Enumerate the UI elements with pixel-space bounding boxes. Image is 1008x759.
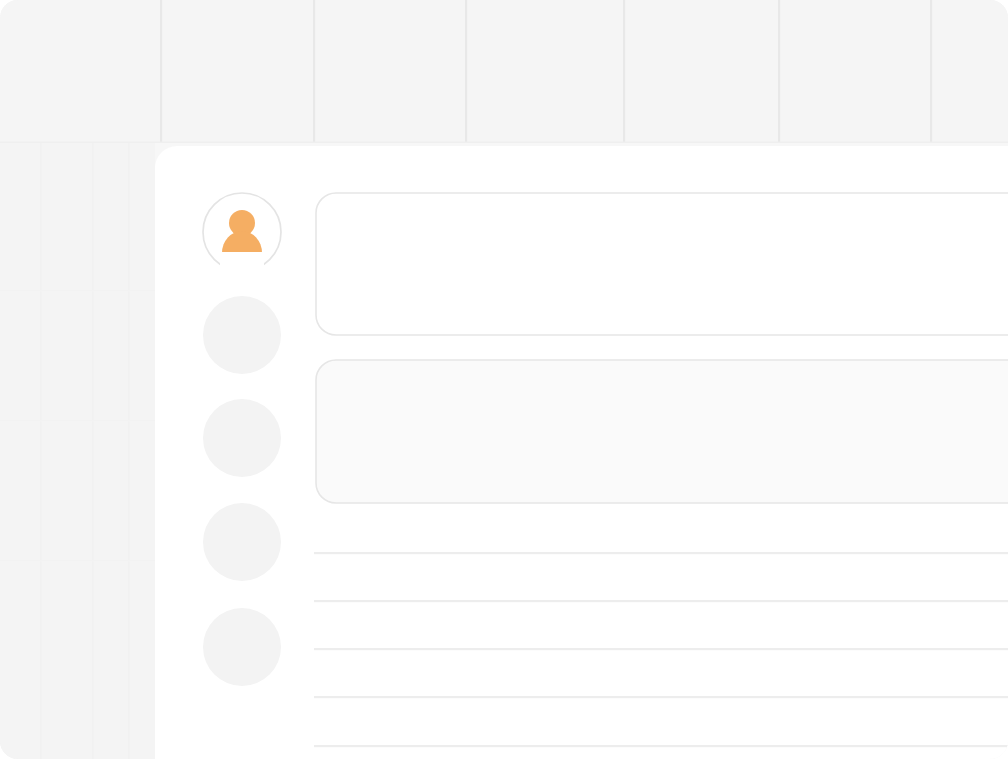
- button[interactable]: Contact: [203, 608, 281, 686]
- button[interactable]: List row: [314, 552, 1008, 600]
- button[interactable]: List row: [314, 696, 1008, 745]
- button[interactable]: List row: [314, 600, 1008, 648]
- button[interactable]: List row: [314, 648, 1008, 696]
- button[interactable]: Profile: [203, 193, 281, 271]
- button[interactable]: Contact: [203, 503, 281, 581]
- button[interactable]: Contact: [203, 296, 281, 374]
- button[interactable]: Contact: [203, 399, 281, 477]
